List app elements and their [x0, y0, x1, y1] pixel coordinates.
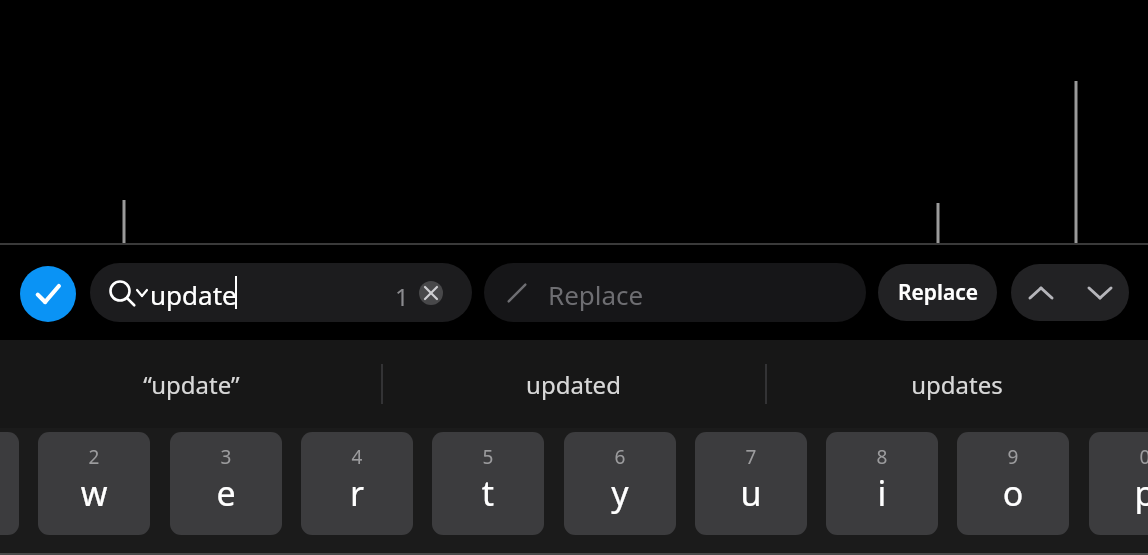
button[interactable]: Edit	[484, 263, 866, 322]
button[interactable]: 5	[432, 432, 544, 535]
button[interactable]: 6	[564, 432, 676, 535]
other: Search options	[108, 280, 150, 306]
staticText: p	[1089, 470, 1148, 516]
staticText: 2	[38, 444, 150, 470]
button[interactable]: 3	[170, 432, 282, 535]
staticText: update	[150, 277, 237, 312]
staticText: Replace	[898, 278, 978, 307]
staticText: updates	[911, 368, 1003, 401]
button[interactable]: Search options	[90, 263, 472, 322]
button[interactable]: updates	[765, 340, 1148, 428]
button[interactable]: 1	[0, 432, 19, 535]
staticText: 6	[564, 444, 676, 470]
button[interactable]: Next match	[1070, 264, 1129, 321]
button[interactable]: updated	[382, 340, 765, 428]
staticText: updated	[526, 368, 621, 401]
button[interactable]: Previous match	[1011, 264, 1070, 321]
button[interactable]: 0	[1089, 432, 1148, 535]
staticText: 8	[826, 444, 938, 470]
staticText: e	[170, 470, 282, 516]
other: Edit	[506, 282, 528, 304]
staticText: 0	[1089, 444, 1148, 470]
staticText: w	[38, 470, 150, 516]
button[interactable]: Done	[20, 266, 76, 322]
button[interactable]: 7	[695, 432, 807, 535]
staticText: “update”	[143, 368, 240, 401]
staticText: u	[695, 470, 807, 516]
staticText: r	[301, 470, 413, 516]
button[interactable]: 4	[301, 432, 413, 535]
staticText: 7	[695, 444, 807, 470]
button[interactable]: 2	[38, 432, 150, 535]
staticText: t	[432, 470, 544, 516]
staticText: o	[957, 470, 1069, 516]
button[interactable]: 8	[826, 432, 938, 535]
staticText: Replace	[548, 277, 644, 312]
staticText: 5	[432, 444, 544, 470]
staticText: 1	[395, 280, 409, 313]
button[interactable]: Replace	[878, 264, 997, 321]
staticText: 9	[957, 444, 1069, 470]
button[interactable]: “update”	[0, 340, 382, 428]
staticText: i	[826, 470, 938, 516]
staticText: y	[564, 470, 676, 516]
button[interactable]: 9	[957, 432, 1069, 535]
staticText: 3	[170, 444, 282, 470]
button[interactable]: Clear search	[419, 281, 443, 305]
staticText: 4	[301, 444, 413, 470]
